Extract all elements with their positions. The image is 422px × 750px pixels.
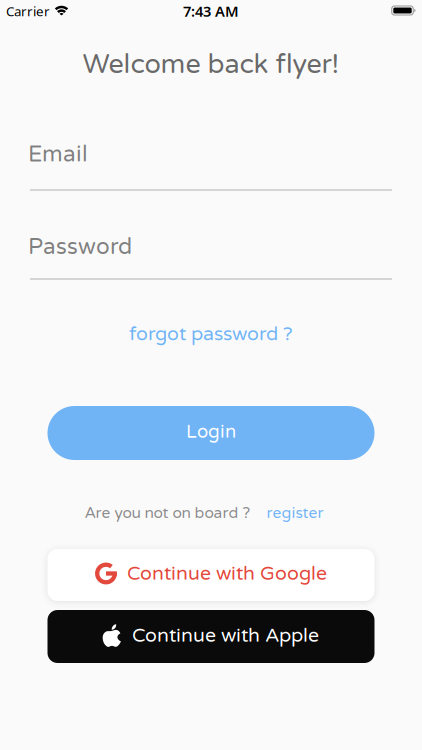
staticText: Email — [28, 141, 88, 168]
button[interactable]: register — [266, 504, 323, 522]
button[interactable]: Password — [0, 234, 422, 279]
button[interactable]: Continue with Google — [47, 549, 374, 601]
staticText: Continue with Apple — [132, 624, 319, 647]
button[interactable]: Login — [47, 406, 374, 460]
staticText: Welcome back flyer! — [82, 48, 339, 81]
staticText: 7:43 AM — [183, 1, 239, 21]
staticText: Password — [28, 233, 132, 261]
button[interactable]: Continue with Apple — [47, 610, 374, 663]
button[interactable]: forgot password ? — [129, 322, 293, 346]
button[interactable]: Email — [0, 142, 422, 190]
staticText: Login — [186, 421, 236, 443]
staticText: Carrier — [6, 2, 50, 20]
staticText: forgot password ? — [129, 322, 293, 346]
staticText: Continue with Google — [127, 562, 327, 585]
staticText: Are you not on board ? — [84, 504, 250, 522]
staticText: register — [266, 504, 323, 522]
